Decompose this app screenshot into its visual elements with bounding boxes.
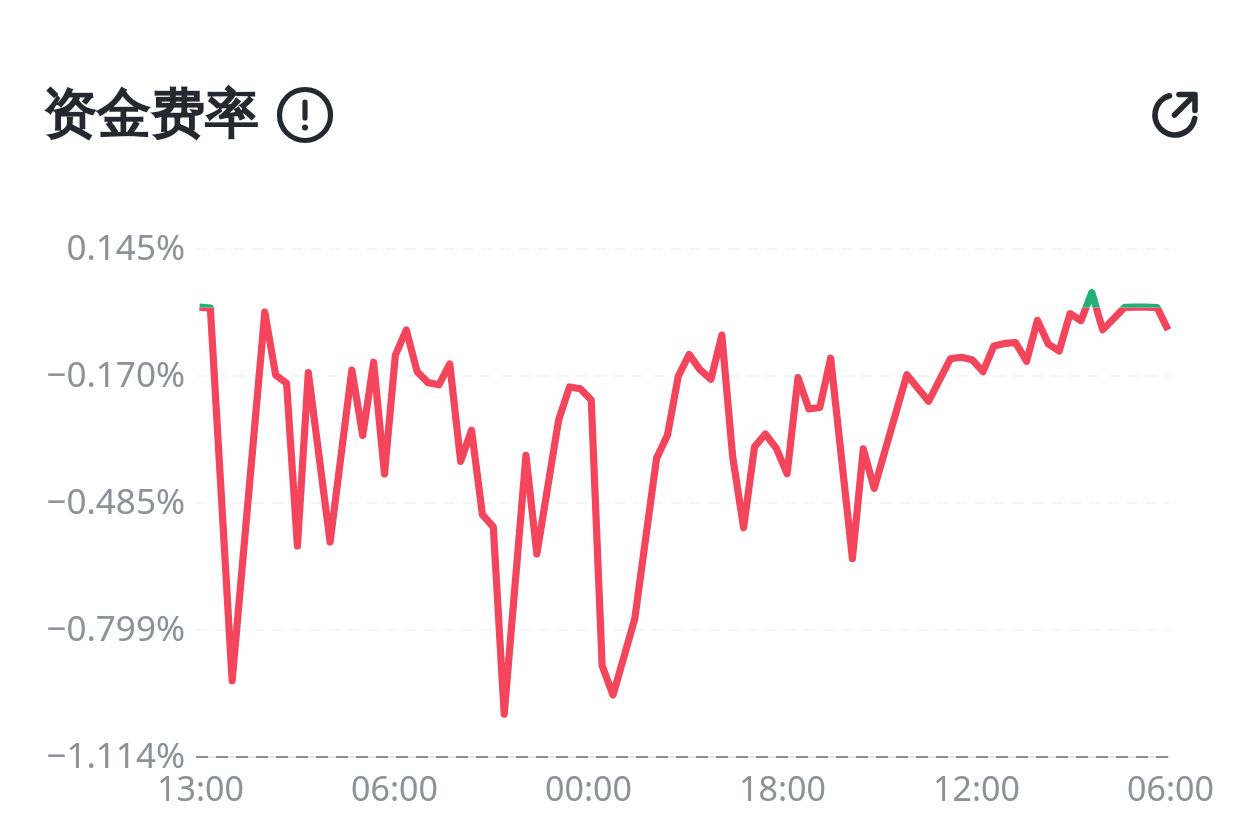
staticText: 资金费率: [42, 81, 258, 149]
button[interactable]: Open in new window: [1143, 83, 1207, 147]
staticText: 06:00: [351, 765, 438, 811]
staticText: 13:00: [157, 765, 244, 811]
staticText: 12:00: [933, 765, 1020, 811]
staticText: −0.170%: [46, 350, 185, 398]
button[interactable]: 资金费率: [42, 81, 334, 149]
staticText: −1.114%: [46, 731, 185, 779]
staticText: 0.145%: [66, 223, 185, 271]
staticText: 00:00: [545, 765, 632, 811]
staticText: 18:00: [739, 765, 826, 811]
staticText: 06:00: [1127, 765, 1214, 811]
staticText: −0.799%: [46, 604, 185, 652]
staticText: −0.485%: [46, 477, 185, 525]
